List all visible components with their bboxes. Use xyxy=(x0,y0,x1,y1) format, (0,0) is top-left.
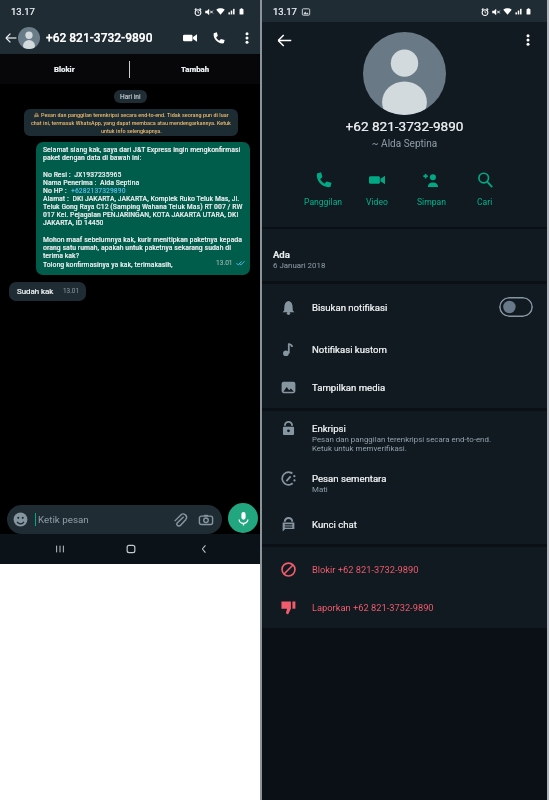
button[interactable]: Mute notifications toggle xyxy=(499,297,533,317)
button[interactable]: Profile photo xyxy=(363,32,446,115)
staticText: 13.01 xyxy=(216,259,233,267)
button[interactable]: Contact photo xyxy=(18,27,40,49)
staticText: 6 Januari 2018 xyxy=(273,261,326,270)
button[interactable]: Voice call xyxy=(208,27,230,49)
button[interactable]: Notifikasi kustom xyxy=(262,337,547,361)
button[interactable]: Tampilkan media xyxy=(262,375,547,399)
staticText: Sudah kak xyxy=(17,287,54,296)
staticText: 13.01 xyxy=(63,287,80,295)
staticText: Tampilkan media xyxy=(312,382,386,393)
staticText: Ada xyxy=(273,249,290,260)
staticText: Notifikasi kustom xyxy=(312,344,387,355)
button[interactable]: Home xyxy=(117,535,145,563)
button[interactable]: Ketik pesan xyxy=(7,505,222,534)
staticText: Blokir +62 821-3732-9890 xyxy=(312,564,419,575)
staticText: Kunci chat xyxy=(312,519,357,530)
button[interactable]: More options xyxy=(236,27,258,49)
button[interactable]: Blokir +62 821-3732-9890 xyxy=(262,557,547,581)
button[interactable]: Back xyxy=(0,27,22,49)
staticText: Alamat : DKI JAKARTA, JAKARTA, Komplek R… xyxy=(43,194,240,202)
staticText: Pesan dan panggilan terenkripsi secara e… xyxy=(312,435,491,453)
staticText: +62 821-3732-9890 xyxy=(46,31,153,45)
staticText: Hari ini xyxy=(120,93,141,101)
staticText: Pesan sementara xyxy=(312,473,387,484)
button[interactable]: Ada xyxy=(262,229,547,281)
staticText: No Resi : JX1937235965 xyxy=(43,170,122,178)
staticText: paket dengan data di bawah ini: xyxy=(43,153,142,161)
button[interactable]: Selamat siang kak, saya dari J&T Express… xyxy=(36,142,250,275)
staticText: Blokir xyxy=(54,65,75,74)
staticText: JAKARTA, ID 14450 xyxy=(43,218,104,226)
staticText: +6282137329890 xyxy=(71,186,126,194)
staticText: Video xyxy=(366,197,388,207)
button[interactable]: More options xyxy=(518,30,538,50)
button[interactable]: Enkripsi xyxy=(262,416,547,440)
staticText: ~ Alda Septina xyxy=(262,138,547,150)
staticText: Selamat siang kak, saya dari J&T Express… xyxy=(43,145,241,153)
button[interactable]: Video call xyxy=(179,27,201,49)
staticText: Tolong konfirmasinya ya kak, terimakasih… xyxy=(43,260,216,268)
staticText: 017 Kel. Pejagalan PENJARINGAN, KOTA JAK… xyxy=(43,210,239,218)
staticText: terima kak? xyxy=(43,251,80,259)
staticText: +62 821-3732-9890 xyxy=(262,118,547,134)
staticText: Nama Penerima : Alda Septina xyxy=(43,178,140,186)
button[interactable]: Kunci chat xyxy=(262,512,547,536)
button[interactable]: Tambah xyxy=(130,54,260,84)
button[interactable]: Voice message xyxy=(228,503,258,533)
staticText: Pesan dan panggilan terenkripsi secara e… xyxy=(41,111,229,119)
staticText: Simpan xyxy=(417,197,446,207)
staticText: Teluk Gong Raya C12 (Samping Wahana Telu… xyxy=(43,202,243,210)
staticText: Mohon maaf sebelumnya kak, kurir menitip… xyxy=(43,235,242,243)
button[interactable]: Laporkan +62 821-3732-9890 xyxy=(262,595,547,619)
staticText: Laporkan +62 821-3732-9890 xyxy=(312,602,434,613)
staticText: orang satu rumah, apakah untuk paketnya … xyxy=(43,243,231,251)
button[interactable]: Pesan dan panggilan terenkripsi secara e… xyxy=(24,109,238,136)
staticText: Ketik pesan xyxy=(38,514,173,525)
staticText: Enkripsi xyxy=(312,423,346,434)
button[interactable]: Bisukan notifikasi xyxy=(262,295,547,319)
button[interactable]: Panggilan xyxy=(297,170,350,209)
staticText: untuk info selengkapnya. xyxy=(101,127,162,135)
button[interactable]: Hari ini xyxy=(114,90,147,103)
button[interactable]: +62 821-3732-9890 xyxy=(46,31,153,45)
button[interactable]: Back xyxy=(273,29,295,51)
button[interactable]: Cari xyxy=(458,170,512,209)
button[interactable]: Blokir xyxy=(0,54,129,84)
staticText: 13.17 xyxy=(273,6,297,17)
staticText: Tambah xyxy=(181,65,210,74)
staticText: 13.17 xyxy=(11,6,35,17)
button[interactable]: Pesan sementara xyxy=(262,466,547,490)
staticText: Panggilan xyxy=(304,197,343,207)
button[interactable]: Sudah kak xyxy=(9,282,86,301)
button[interactable]: Video xyxy=(350,170,404,209)
staticText: chat ini, termasuk WhatsApp, yang dapat … xyxy=(31,119,231,127)
staticText: Mati xyxy=(312,485,328,494)
staticText: Bisukan notifikasi xyxy=(312,302,388,313)
button[interactable]: Back xyxy=(190,535,218,563)
staticText: Cari xyxy=(477,197,493,207)
staticText: No HP : xyxy=(43,186,71,194)
button[interactable]: Simpan xyxy=(404,170,458,209)
button[interactable]: Recents xyxy=(46,535,74,563)
